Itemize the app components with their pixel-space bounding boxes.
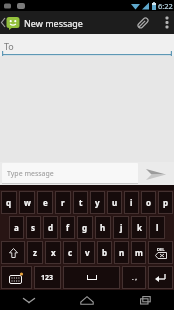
button[interactable]	[138, 162, 174, 185]
staticText: m	[135, 247, 143, 258]
button[interactable]: v	[80, 241, 95, 264]
button[interactable]	[1, 266, 32, 289]
staticText: New message	[24, 17, 83, 29]
staticText: i	[130, 197, 133, 208]
staticText: o	[146, 197, 151, 208]
button[interactable]: 123	[34, 266, 61, 289]
staticText: h	[100, 222, 106, 233]
button[interactable]: w	[19, 191, 35, 214]
staticText: n	[119, 247, 125, 258]
staticText: p	[163, 197, 169, 208]
staticText: x	[51, 247, 56, 258]
button[interactable]: c	[63, 241, 78, 264]
staticText: DEL	[157, 247, 165, 252]
button[interactable]: To	[0, 34, 174, 56]
staticText: z	[33, 247, 37, 258]
button[interactable]	[160, 11, 173, 34]
staticText: e	[43, 197, 48, 208]
button[interactable]: h	[95, 216, 111, 239]
button[interactable]	[0, 290, 58, 310]
staticText: l	[156, 222, 159, 233]
staticText: d	[48, 222, 54, 233]
staticText: f	[66, 222, 70, 233]
button[interactable]	[63, 266, 120, 289]
button[interactable]: e	[37, 191, 53, 214]
staticText: q	[6, 197, 12, 208]
button[interactable]: n	[114, 241, 129, 264]
staticText: . ,	[132, 274, 137, 282]
button[interactable]: DEL	[148, 241, 173, 264]
button[interactable]: f	[60, 216, 75, 239]
button[interactable]	[133, 11, 153, 34]
staticText: a	[14, 222, 19, 233]
staticText: v	[85, 247, 90, 258]
staticText: r	[61, 197, 65, 208]
staticText: y	[95, 197, 100, 208]
button[interactable]	[148, 266, 173, 289]
staticText: u	[112, 197, 118, 208]
staticText: Type message	[7, 169, 54, 179]
button[interactable]: o	[141, 191, 156, 214]
staticText: g	[82, 222, 88, 233]
staticText: b	[102, 247, 108, 258]
button[interactable]: j	[113, 216, 129, 239]
button[interactable]	[116, 290, 174, 310]
button[interactable]	[58, 290, 116, 310]
staticText: 123	[41, 273, 54, 283]
button[interactable]: q	[1, 191, 17, 214]
button[interactable]: t	[73, 191, 88, 214]
button[interactable]: l	[149, 216, 165, 239]
button[interactable]	[1, 241, 25, 264]
button[interactable]: . ,	[122, 266, 146, 289]
button[interactable]: New message	[0, 11, 174, 34]
button[interactable]: s	[26, 216, 41, 239]
staticText: To	[4, 40, 14, 52]
button[interactable]: y	[90, 191, 105, 214]
staticText: 6:22	[158, 1, 173, 11]
button[interactable]: b	[97, 241, 112, 264]
button[interactable]: m	[131, 241, 146, 264]
button[interactable]: a	[9, 216, 24, 239]
staticText: t	[79, 197, 83, 208]
button[interactable]: r	[55, 191, 71, 214]
button[interactable]: z	[27, 241, 43, 264]
button[interactable]: x	[45, 241, 61, 264]
staticText: c	[68, 247, 73, 258]
staticText: w	[24, 197, 31, 208]
button[interactable]: Type message	[2, 163, 138, 184]
staticText: s	[31, 222, 36, 233]
button[interactable]: g	[77, 216, 93, 239]
button[interactable]: d	[43, 216, 58, 239]
button[interactable]: i	[124, 191, 139, 214]
button[interactable]: u	[107, 191, 122, 214]
button[interactable]: k	[131, 216, 147, 239]
button[interactable]: p	[158, 191, 173, 214]
staticText: k	[137, 222, 142, 233]
staticText: j	[120, 222, 123, 233]
